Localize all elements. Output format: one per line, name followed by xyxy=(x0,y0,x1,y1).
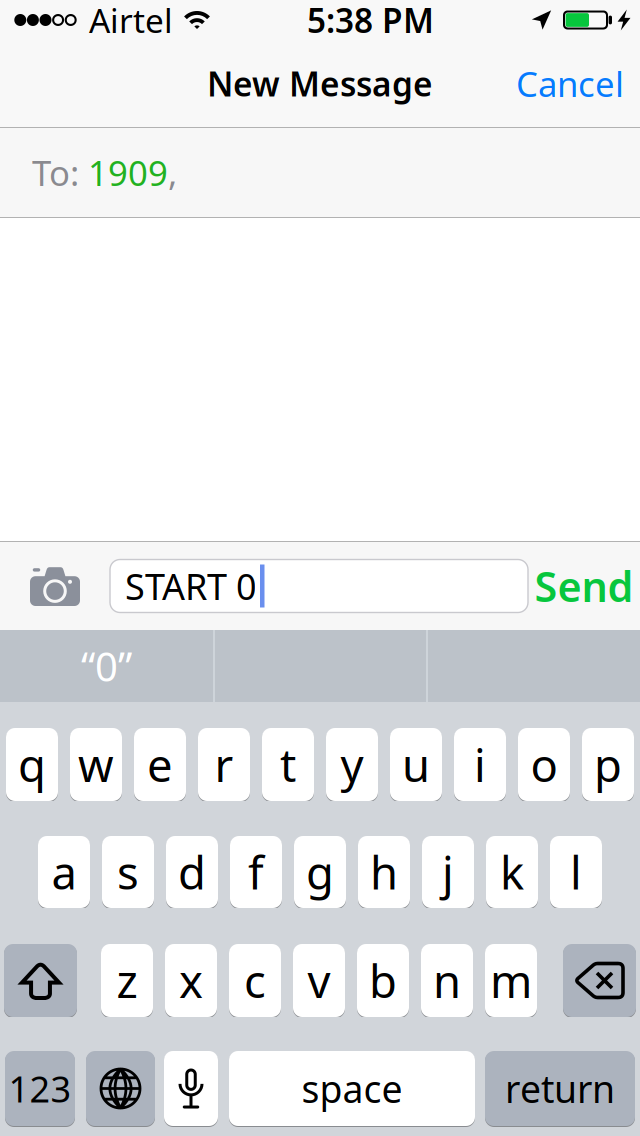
staticText: p xyxy=(594,734,622,795)
staticText: “0” xyxy=(81,639,132,692)
button[interactable]: r xyxy=(198,728,250,801)
button[interactable]: Camera xyxy=(0,542,110,630)
button[interactable]: c xyxy=(229,944,281,1017)
button[interactable]: a xyxy=(38,836,90,908)
staticText: Cancel xyxy=(516,60,624,106)
button[interactable]: g xyxy=(294,836,346,908)
staticText: q xyxy=(18,734,46,795)
button[interactable]: Dictation xyxy=(164,1051,218,1126)
button[interactable]: Delete xyxy=(563,944,636,1017)
button[interactable]: START 0 xyxy=(110,559,528,612)
button[interactable]: return xyxy=(485,1051,635,1126)
staticText: g xyxy=(306,842,334,902)
staticText: u xyxy=(402,734,430,795)
staticText: b xyxy=(369,950,397,1011)
staticText: y xyxy=(340,734,363,795)
staticText: return xyxy=(505,1064,615,1113)
staticText: o xyxy=(530,734,557,795)
button[interactable]: v xyxy=(293,944,345,1017)
staticText: space xyxy=(301,1064,402,1113)
staticText: a xyxy=(51,842,76,902)
staticText: d xyxy=(178,842,206,902)
staticText: To: xyxy=(32,149,88,195)
button[interactable]: z xyxy=(101,944,153,1017)
staticText: New Message xyxy=(207,61,433,106)
staticText: 5:38 PM xyxy=(307,0,434,42)
staticText: Send xyxy=(534,559,633,613)
staticText: x xyxy=(179,950,203,1011)
button[interactable]: b xyxy=(357,944,409,1017)
button[interactable]: q xyxy=(6,728,58,801)
staticText: l xyxy=(570,842,582,902)
staticText: 123 xyxy=(8,1065,71,1112)
staticText: r xyxy=(214,734,233,795)
staticText: v xyxy=(307,950,330,1011)
staticText: f xyxy=(248,842,264,902)
button[interactable]: x xyxy=(165,944,217,1017)
button[interactable]: “0” xyxy=(0,630,213,702)
staticText: h xyxy=(370,842,398,902)
staticText: Airtel xyxy=(89,0,173,42)
button[interactable]: p xyxy=(582,728,634,801)
staticText: 1909 xyxy=(88,149,168,195)
button[interactable]: space xyxy=(229,1051,475,1126)
staticText: c xyxy=(244,950,266,1011)
staticText: s xyxy=(117,842,139,902)
staticText: e xyxy=(147,734,173,795)
button[interactable]: w xyxy=(70,728,122,801)
button[interactable]: Next keyboard xyxy=(86,1051,155,1126)
button[interactable]: o xyxy=(518,728,570,801)
staticText: m xyxy=(490,950,532,1011)
button[interactable]: d xyxy=(166,836,218,908)
staticText: i xyxy=(474,734,486,795)
button[interactable]: j xyxy=(422,836,474,908)
button[interactable]: m xyxy=(485,944,537,1017)
button[interactable]: n xyxy=(421,944,473,1017)
staticText: START 0 xyxy=(125,562,257,610)
button[interactable]: f xyxy=(230,836,282,908)
button[interactable]: y xyxy=(326,728,378,801)
staticText: j xyxy=(442,842,454,902)
staticText: t xyxy=(280,734,296,795)
staticText: w xyxy=(78,734,114,795)
staticText: , xyxy=(168,149,177,195)
staticText: z xyxy=(116,950,137,1011)
button[interactable]: i xyxy=(454,728,506,801)
button[interactable]: h xyxy=(358,836,410,908)
button[interactable]: Send xyxy=(528,542,640,630)
button[interactable]: 123 xyxy=(5,1051,75,1126)
button[interactable]: l xyxy=(550,836,602,908)
button[interactable]: Shift xyxy=(4,944,77,1017)
button[interactable]: Cancel xyxy=(500,60,640,106)
button[interactable]: u xyxy=(390,728,442,801)
button[interactable]: e xyxy=(134,728,186,801)
staticText: k xyxy=(500,842,524,902)
staticText: n xyxy=(433,950,461,1011)
button[interactable]: k xyxy=(486,836,538,908)
button[interactable]: t xyxy=(262,728,314,801)
button[interactable]: s xyxy=(102,836,154,908)
